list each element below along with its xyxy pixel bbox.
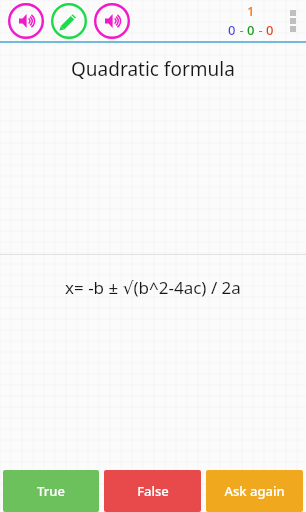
staticText: - (255, 21, 266, 39)
staticText: False (137, 482, 169, 500)
button[interactable]: More options (280, 0, 306, 41)
staticText: 1 (247, 2, 255, 20)
button[interactable]: Play answer sound (93, 2, 131, 40)
button[interactable]: Ask again (206, 470, 303, 512)
staticText: Ask again (224, 482, 285, 500)
staticText: True (37, 482, 65, 500)
button[interactable]: Play question sound (7, 2, 45, 40)
staticText: 0 (247, 21, 255, 39)
staticText: - (236, 21, 247, 39)
staticText: 0 (266, 21, 274, 39)
staticText: Quadratic formula (71, 56, 235, 82)
button[interactable]: False (104, 470, 201, 512)
staticText: 0 (228, 21, 236, 39)
button[interactable]: Edit (50, 2, 88, 40)
staticText: x= -b ± √(b^2-4ac) / 2a (65, 276, 241, 299)
button[interactable]: True (3, 470, 99, 512)
